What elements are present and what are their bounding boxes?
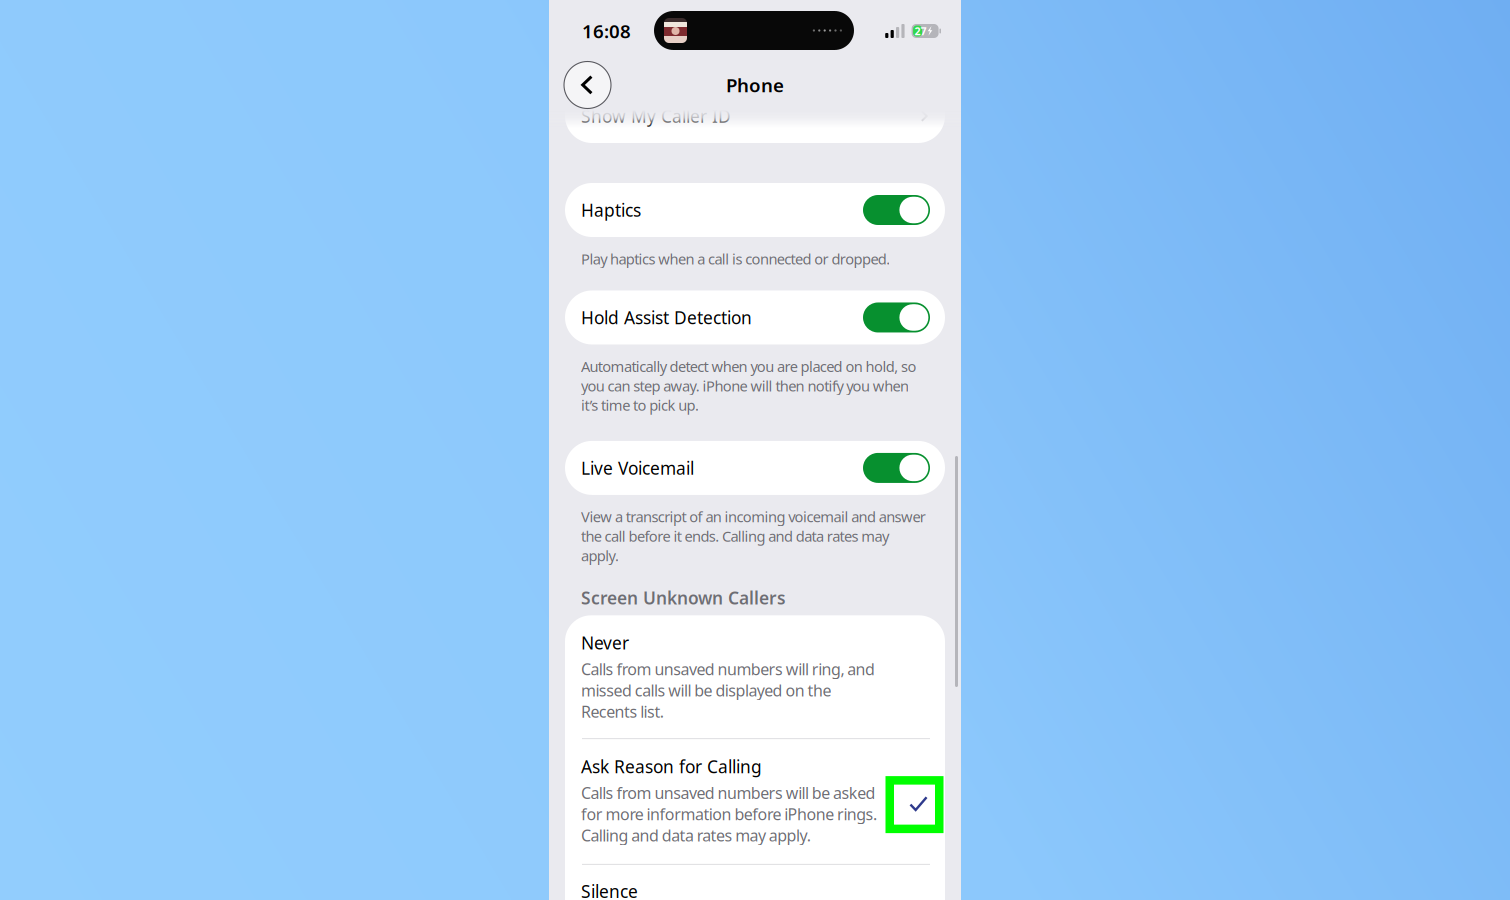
staticText: Calls from unsaved numbers will ring, an… [581, 658, 875, 722]
staticText: 16:08 [582, 19, 631, 43]
button[interactable]: Back [564, 61, 611, 108]
button[interactable]: Show My Caller ID [565, 89, 945, 143]
staticText: Automatically detect when you are placed… [581, 356, 916, 415]
staticText: Play haptics when a call is connected or… [581, 249, 890, 268]
staticText: Hold Assist Detection [581, 306, 752, 329]
staticText: Show My Caller ID [581, 104, 731, 127]
button[interactable]: Ask Reason for Calling [565, 739, 945, 864]
staticText: Calls from unsaved numbers will be asked… [581, 782, 877, 846]
staticText: 27 [915, 24, 927, 38]
staticText: Silence [581, 880, 638, 900]
button[interactable]: Hold Assist Detection [565, 290, 945, 344]
staticText: Haptics [581, 198, 641, 221]
staticText: Ask Reason for Calling [581, 755, 762, 778]
staticText: Never [581, 631, 629, 654]
button[interactable]: Live Voicemail [565, 441, 945, 495]
staticText: Live Voicemail [581, 456, 694, 479]
staticText: Screen Unknown Callers [581, 586, 786, 609]
button[interactable]: Never [565, 615, 945, 738]
staticText: Phone [726, 73, 784, 97]
button[interactable]: Haptics [565, 183, 945, 237]
staticText: View a transcript of an incoming voicema… [581, 507, 926, 565]
